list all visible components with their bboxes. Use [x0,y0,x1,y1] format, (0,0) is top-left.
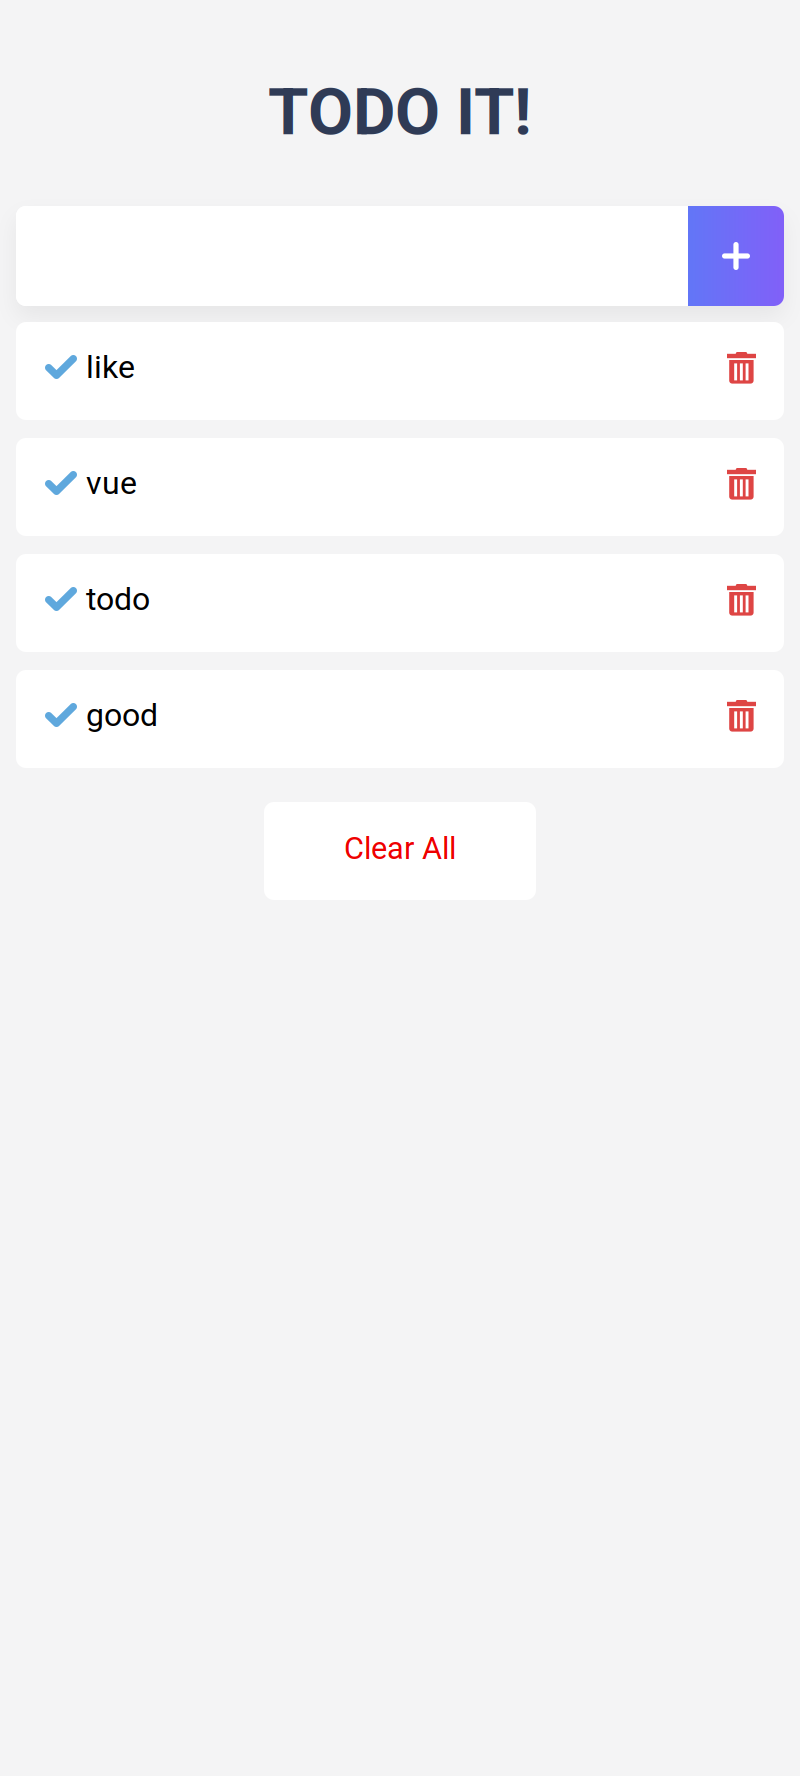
button[interactable]: Toggle like [16,322,77,420]
staticText: vue [86,464,137,502]
staticText: Clear All [344,830,456,866]
button[interactable]: Clear All [264,802,536,900]
staticText: TODO IT! [268,74,532,150]
staticText: good [86,696,158,734]
button[interactable]: Toggle todo [16,554,77,652]
button[interactable]: Toggle vue [16,438,77,536]
button[interactable]: Add todo [688,206,784,306]
button[interactable]: Toggle good [16,670,77,768]
button[interactable]: Delete todo [727,554,784,652]
button[interactable]: Delete good [727,670,784,768]
button[interactable]: Delete like [727,322,784,420]
staticText: todo [86,580,150,618]
button[interactable]: Delete vue [727,438,784,536]
staticText: like [86,348,135,386]
